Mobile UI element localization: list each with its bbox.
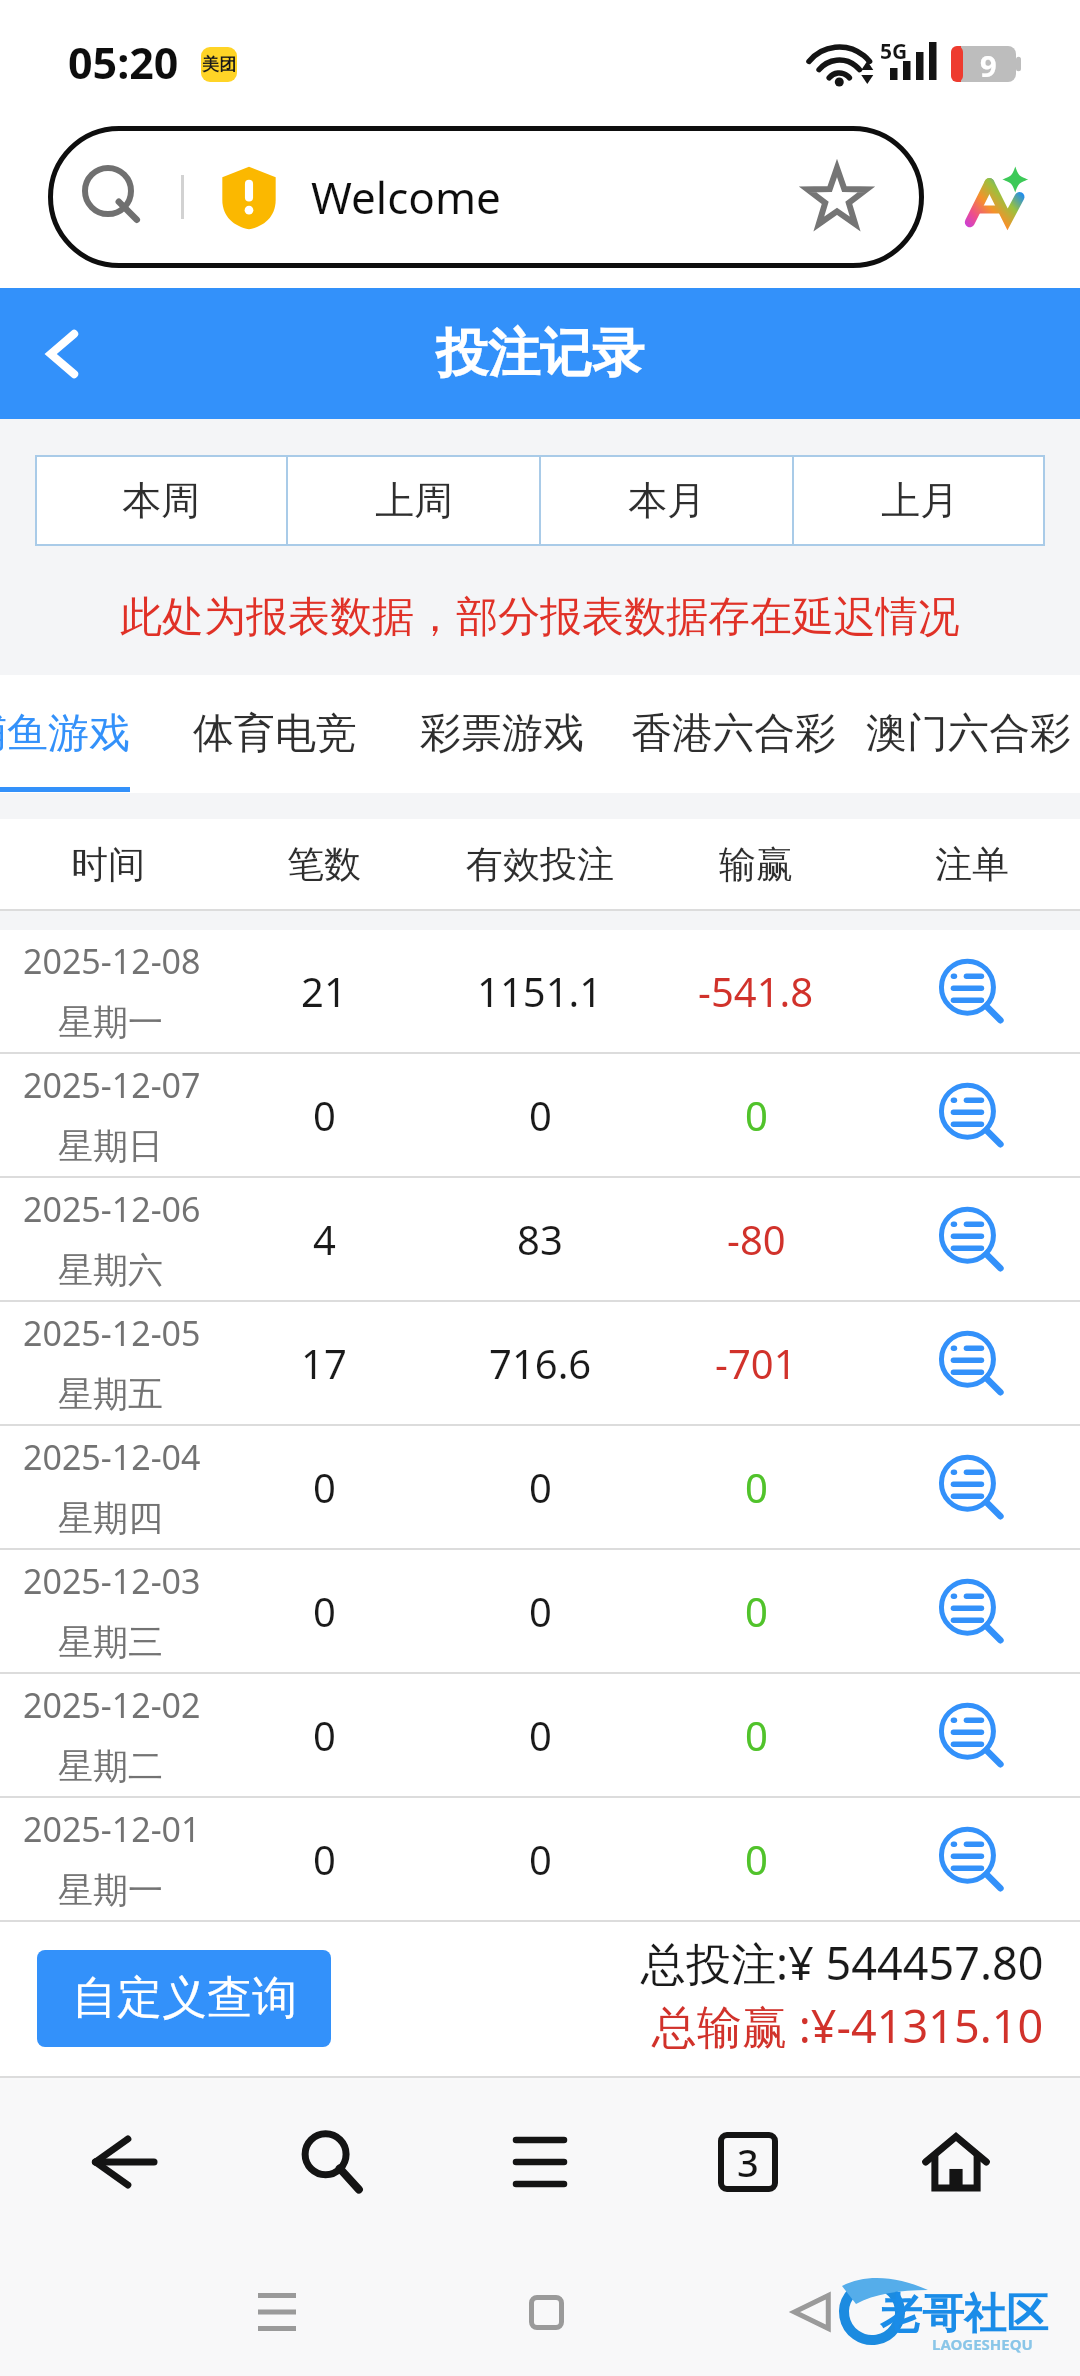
button[interactable]: Menu <box>436 2078 644 2246</box>
button[interactable]: Home <box>852 2078 1060 2246</box>
staticText: 0 <box>529 1832 552 1886</box>
staticText: 有效投注 <box>466 841 614 888</box>
button[interactable]: 体育电竞 <box>169 675 381 793</box>
staticText: 9 <box>980 46 997 82</box>
button[interactable]: 2025-12-02 <box>0 1674 1080 1796</box>
staticText: 总投注:¥ 544457.80 <box>641 1932 1044 1993</box>
staticText: 总输赢 :¥-41315.10 <box>652 1995 1044 2056</box>
staticText: 0 <box>745 1708 768 1762</box>
staticText: 星期一 <box>58 1868 163 1912</box>
staticText: 投注记录 <box>436 321 644 387</box>
button[interactable]: 本周 <box>35 455 286 546</box>
button[interactable]: View bet detail <box>934 1201 1010 1277</box>
button[interactable]: 2025-12-05 <box>0 1302 1080 1424</box>
button[interactable]: View bet detail <box>934 1449 1010 1525</box>
staticText: 上月 <box>881 476 959 525</box>
other: AI assistant <box>960 162 1030 232</box>
staticText: 0 <box>529 1584 552 1638</box>
staticText: 彩票游戏 <box>420 708 584 760</box>
staticText: 0 <box>745 1584 768 1638</box>
staticText: 体育电竞 <box>193 708 357 760</box>
button[interactable]: 上周 <box>288 455 539 546</box>
button[interactable]: Back <box>0 288 126 419</box>
staticText: 澳门六合彩 <box>866 708 1071 760</box>
staticText: 2025-12-07 <box>23 1062 201 1108</box>
staticText: 2025-12-02 <box>23 1682 201 1728</box>
button[interactable]: View bet detail <box>934 1325 1010 1401</box>
button[interactable]: 2025-12-01 <box>0 1798 1080 1920</box>
staticText: LAOGESHEQU <box>932 2334 1033 2354</box>
staticText: 0 <box>313 1088 336 1142</box>
button[interactable]: View bet detail <box>934 1697 1010 1773</box>
button[interactable]: 上月 <box>794 455 1045 546</box>
staticText: 0 <box>313 1460 336 1514</box>
other: Bookmark <box>806 166 868 228</box>
button[interactable]: 自定义查询 <box>37 1950 331 2047</box>
staticText: 星期二 <box>58 1744 163 1788</box>
staticText: 本周 <box>122 476 200 525</box>
staticText: -541.8 <box>698 964 814 1018</box>
staticText: 716.6 <box>489 1336 592 1390</box>
staticText: 5G <box>880 37 908 66</box>
staticText: 2025-12-03 <box>23 1558 201 1604</box>
staticText: 香港六合彩 <box>631 708 836 760</box>
staticText: 美团 <box>202 54 236 75</box>
staticText: 此处为报表数据，部分报表数据存在延迟情况 <box>120 591 960 644</box>
button[interactable]: 彩票游戏 <box>396 675 608 793</box>
staticText: 05:20 <box>68 33 179 92</box>
staticText: 3 <box>737 2136 759 2188</box>
staticText: -701 <box>715 1336 797 1390</box>
button[interactable]: Back <box>20 2078 228 2246</box>
staticText: Welcome <box>311 167 501 227</box>
button[interactable]: 捕鱼游戏 <box>0 675 154 793</box>
staticText: 83 <box>517 1212 563 1266</box>
button[interactable]: 澳门六合彩 <box>837 675 1080 793</box>
button[interactable]: 2025-12-06 <box>0 1178 1080 1300</box>
staticText: 0 <box>745 1460 768 1514</box>
staticText: 星期五 <box>58 1372 163 1416</box>
staticText: 0 <box>745 1832 768 1886</box>
button[interactable]: View bet detail <box>934 1821 1010 1897</box>
button[interactable]: 2025-12-08 <box>0 930 1080 1052</box>
staticText: 2025-12-08 <box>23 938 201 984</box>
staticText: 上周 <box>375 476 453 525</box>
staticText: 捕鱼游戏 <box>0 708 130 760</box>
staticText: 老哥社区 <box>880 2288 1048 2341</box>
staticText: 自定义查询 <box>72 1970 297 2027</box>
button[interactable]: 香港六合彩 <box>602 675 864 793</box>
button[interactable]: Search <box>228 2078 436 2246</box>
button[interactable]: Tabs <box>644 2078 852 2246</box>
button[interactable]: View bet detail <box>934 1573 1010 1649</box>
staticText: 2025-12-01 <box>23 1806 201 1852</box>
button[interactable]: 2025-12-03 <box>0 1550 1080 1672</box>
staticText: 1151.1 <box>477 964 603 1018</box>
staticText: 笔数 <box>287 841 361 888</box>
button[interactable]: View bet detail <box>934 1077 1010 1153</box>
staticText: 21 <box>301 964 347 1018</box>
staticText: 时间 <box>71 841 145 888</box>
staticText: 0 <box>313 1832 336 1886</box>
staticText: 0 <box>529 1460 552 1514</box>
staticText: -80 <box>727 1212 786 1266</box>
staticText: 2025-12-06 <box>23 1186 201 1232</box>
button[interactable]: View bet detail <box>934 953 1010 1029</box>
staticText: 2025-12-05 <box>23 1310 201 1356</box>
staticText: 星期三 <box>58 1620 163 1664</box>
staticText: 0 <box>745 1088 768 1142</box>
button[interactable]: 本月 <box>541 455 792 546</box>
button[interactable]: Recent apps <box>217 2252 337 2372</box>
staticText: 星期日 <box>58 1124 163 1168</box>
staticText: 0 <box>313 1708 336 1762</box>
button[interactable]: Home <box>486 2252 606 2372</box>
staticText: 0 <box>313 1584 336 1638</box>
staticText: 本月 <box>628 476 706 525</box>
button[interactable]: 2025-12-07 <box>0 1054 1080 1176</box>
button[interactable]: 2025-12-04 <box>0 1426 1080 1548</box>
staticText: 17 <box>301 1336 347 1390</box>
staticText: 注单 <box>935 841 1009 888</box>
button[interactable]: Back <box>751 2252 871 2372</box>
staticText: 星期一 <box>58 1000 163 1044</box>
staticText: 星期四 <box>58 1496 163 1540</box>
button[interactable]: Welcome <box>48 126 924 268</box>
staticText: 星期六 <box>58 1248 163 1292</box>
